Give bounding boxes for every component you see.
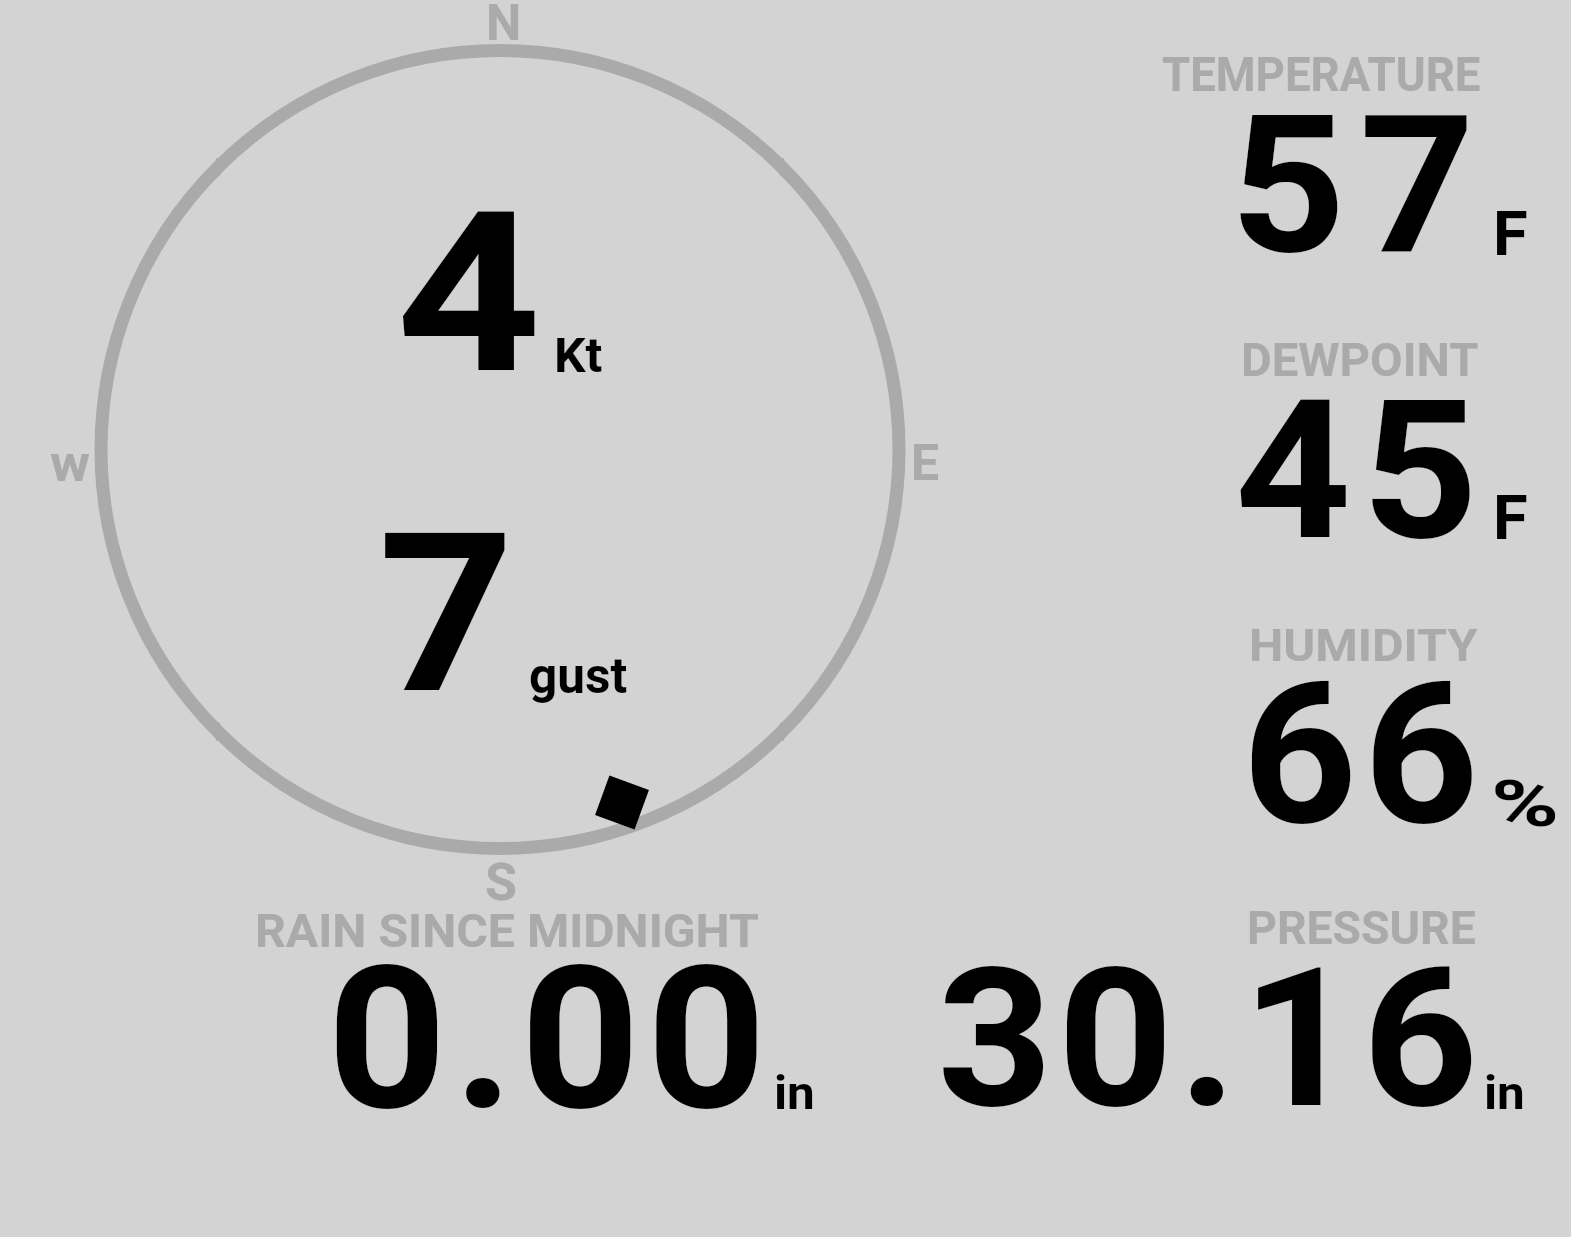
staticText: TEMPERATURE: [1162, 46, 1480, 103]
staticText: F: [1493, 482, 1528, 554]
staticText: in: [1484, 1066, 1525, 1121]
button[interactable]: Humidity 66 percent: [1150, 618, 1560, 833]
staticText: gust: [529, 647, 628, 705]
staticText: 7: [378, 486, 515, 744]
staticText: HUMIDITY: [1249, 619, 1478, 672]
staticText: 30.16: [937, 926, 1483, 1152]
staticText: DEWPOINT: [1241, 332, 1479, 387]
button[interactable]: Wind 4 knots, gusting 7, from the south …: [96, 46, 904, 854]
staticText: %: [1491, 767, 1560, 842]
staticText: 0.00: [327, 922, 773, 1155]
staticText: 45: [1235, 358, 1489, 584]
staticText: N: [486, 0, 522, 53]
staticText: RAIN SINCE MIDNIGHT: [255, 904, 759, 959]
button[interactable]: Rain since midnight 0.00 inches: [250, 904, 820, 1114]
button[interactable]: Temperature 57 degrees Fahrenheit: [1150, 46, 1550, 261]
staticText: in: [774, 1066, 815, 1121]
staticText: PRESSURE: [1247, 901, 1476, 955]
staticText: S: [485, 852, 517, 913]
staticText: w: [50, 435, 90, 494]
staticText: 66: [1242, 639, 1486, 870]
staticText: F: [1493, 198, 1528, 270]
staticText: E: [911, 434, 940, 493]
staticText: 4: [396, 164, 542, 424]
staticText: 57: [1230, 73, 1489, 298]
button[interactable]: Pressure 30.16 inches: [900, 900, 1530, 1112]
button[interactable]: Dewpoint 45 degrees Fahrenheit: [1150, 332, 1550, 547]
staticText: Kt: [554, 328, 603, 384]
